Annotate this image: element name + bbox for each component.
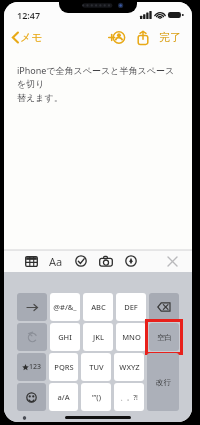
button[interactable]: Close keyboard [161, 253, 184, 270]
staticText: MNO [122, 332, 141, 342]
button[interactable]: GHI [50, 323, 80, 351]
staticText: JKL [93, 332, 104, 342]
staticText: Aa [49, 254, 63, 269]
button[interactable]: Next candidate [17, 293, 47, 321]
button[interactable]: Add people [105, 28, 129, 47]
button[interactable]: ABC [83, 293, 113, 321]
staticText: WXYZ [119, 362, 140, 372]
staticText: DEF [124, 302, 138, 312]
button[interactable]: 改行 [147, 353, 179, 411]
staticText: 12:47 [17, 9, 41, 21]
button[interactable]: 123 [17, 353, 46, 381]
button[interactable]: PQRS [49, 353, 78, 381]
button[interactable]: Markup [124, 253, 138, 269]
button[interactable]: MNO [116, 323, 146, 351]
staticText: a/A [57, 392, 70, 402]
button[interactable]: DEF [116, 293, 146, 321]
button[interactable]: iPhoneで全角スペースと半角スペースを切り 替えます。 [4, 50, 192, 250]
staticText: @#/&_ [53, 302, 77, 312]
staticText: PQRS [54, 362, 74, 372]
button[interactable]: WXYZ [114, 353, 144, 381]
button[interactable]: Text format [48, 252, 64, 271]
button[interactable]: 、。?! [114, 383, 144, 411]
button[interactable]: Checklist [74, 253, 88, 269]
button[interactable]: Table [24, 254, 39, 269]
button[interactable]: JKL [83, 323, 113, 351]
button[interactable]: Delete [149, 293, 179, 321]
button[interactable]: Camera [98, 254, 114, 269]
other: Undo [27, 332, 38, 343]
staticText: メモ [20, 30, 43, 44]
button[interactable]: Share [133, 28, 153, 47]
staticText: ABC [91, 302, 106, 312]
button[interactable]: 完了 [156, 27, 184, 47]
staticText: 改行 [156, 378, 171, 387]
staticText: 、。?! [120, 393, 138, 402]
button[interactable]: TUV [81, 353, 111, 381]
other: Delete [157, 302, 171, 312]
staticText: iPhoneで全角スペースと半角スペースを切り 替えます。 [17, 64, 180, 104]
button[interactable]: @#/&_ [50, 293, 80, 321]
button[interactable]: a/A [49, 383, 78, 411]
button[interactable]: ’”() [81, 383, 111, 411]
other: Next candidate [26, 303, 39, 312]
other: Emoji [26, 392, 37, 403]
staticText: 完了 [159, 30, 181, 44]
staticText: 空白 [157, 333, 172, 342]
button[interactable]: Undo [17, 323, 47, 351]
button[interactable]: 空白 [149, 323, 179, 351]
button[interactable]: Emoji [17, 383, 46, 411]
staticText: ’”() [92, 392, 101, 402]
button[interactable]: メモ [4, 27, 49, 47]
staticText: TUV [89, 362, 104, 372]
button[interactable]: Switch keyboard [16, 414, 33, 422]
staticText: GHI [58, 332, 72, 342]
staticText: 123 [29, 362, 42, 372]
